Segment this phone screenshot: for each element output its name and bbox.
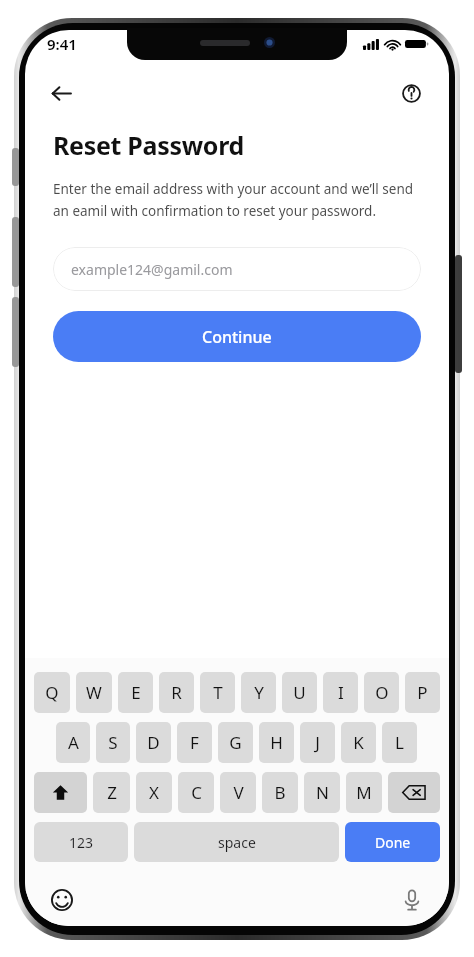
button[interactable]: H	[259, 722, 294, 763]
staticText: Reset Password	[53, 128, 245, 162]
button[interactable]: S	[96, 722, 130, 763]
button[interactable]: Emoji	[47, 885, 77, 915]
staticText: G	[229, 731, 242, 754]
staticText: I	[338, 681, 344, 704]
button[interactable]: K	[341, 722, 376, 763]
staticText: M	[356, 781, 372, 804]
staticText: S	[108, 731, 118, 754]
button[interactable]: C	[178, 772, 214, 813]
staticText: 123	[69, 833, 94, 852]
button[interactable]: space	[134, 822, 339, 862]
button[interactable]: D	[136, 722, 171, 763]
button[interactable]: W	[76, 672, 112, 713]
button[interactable]: I	[323, 672, 358, 713]
staticText: Continue	[202, 326, 272, 348]
button[interactable]: T	[200, 672, 235, 713]
staticText: K	[353, 731, 364, 754]
button[interactable]: Q	[34, 672, 70, 713]
button[interactable]: F	[177, 722, 212, 763]
staticText: Done	[375, 833, 411, 852]
staticText: R	[171, 681, 182, 704]
staticText: E	[131, 681, 141, 704]
staticText: Q	[45, 681, 59, 704]
staticText: 9:41	[47, 34, 77, 54]
staticText: Enter the email address with your accoun…	[53, 180, 421, 220]
staticText: L	[395, 731, 404, 754]
button[interactable]: X	[136, 772, 172, 813]
staticText: Y	[254, 681, 264, 704]
staticText: W	[86, 681, 102, 704]
staticText: O	[375, 681, 389, 704]
button[interactable]: example124@gamil.com	[53, 247, 421, 291]
button[interactable]: Continue	[53, 311, 421, 362]
button[interactable]: E	[118, 672, 153, 713]
button[interactable]: Done	[345, 822, 440, 862]
button[interactable]: Help	[391, 76, 431, 110]
button[interactable]: J	[300, 722, 335, 763]
button[interactable]: Shift	[34, 772, 87, 813]
staticText: example124@gamil.com	[71, 260, 233, 279]
button[interactable]: Backspace	[388, 772, 440, 813]
button[interactable]: G	[218, 722, 253, 763]
button[interactable]: L	[382, 722, 417, 763]
staticText: B	[274, 781, 286, 804]
button[interactable]: R	[159, 672, 194, 713]
button[interactable]: P	[405, 672, 440, 713]
button[interactable]: Dictate	[397, 885, 427, 915]
button[interactable]: 123	[34, 822, 128, 862]
staticText: Z	[107, 781, 117, 804]
staticText: P	[417, 681, 428, 704]
staticText: space	[218, 833, 256, 852]
button[interactable]: O	[364, 672, 399, 713]
button[interactable]: Back	[41, 76, 81, 110]
staticText: T	[213, 681, 223, 704]
button[interactable]: V	[220, 772, 256, 813]
button[interactable]: Z	[93, 772, 130, 813]
staticText: F	[190, 731, 199, 754]
button[interactable]: Y	[241, 672, 276, 713]
button[interactable]: A	[56, 722, 90, 763]
staticText: U	[293, 681, 306, 704]
staticText: C	[191, 781, 202, 804]
staticText: V	[233, 781, 244, 804]
staticText: X	[149, 781, 159, 804]
button[interactable]: U	[282, 672, 317, 713]
staticText: D	[147, 731, 160, 754]
button[interactable]: M	[346, 772, 382, 813]
staticText: H	[270, 731, 283, 754]
staticText: J	[315, 731, 320, 754]
staticText: N	[316, 781, 329, 804]
button[interactable]: N	[304, 772, 340, 813]
staticText: A	[68, 731, 79, 754]
button[interactable]: B	[262, 772, 298, 813]
